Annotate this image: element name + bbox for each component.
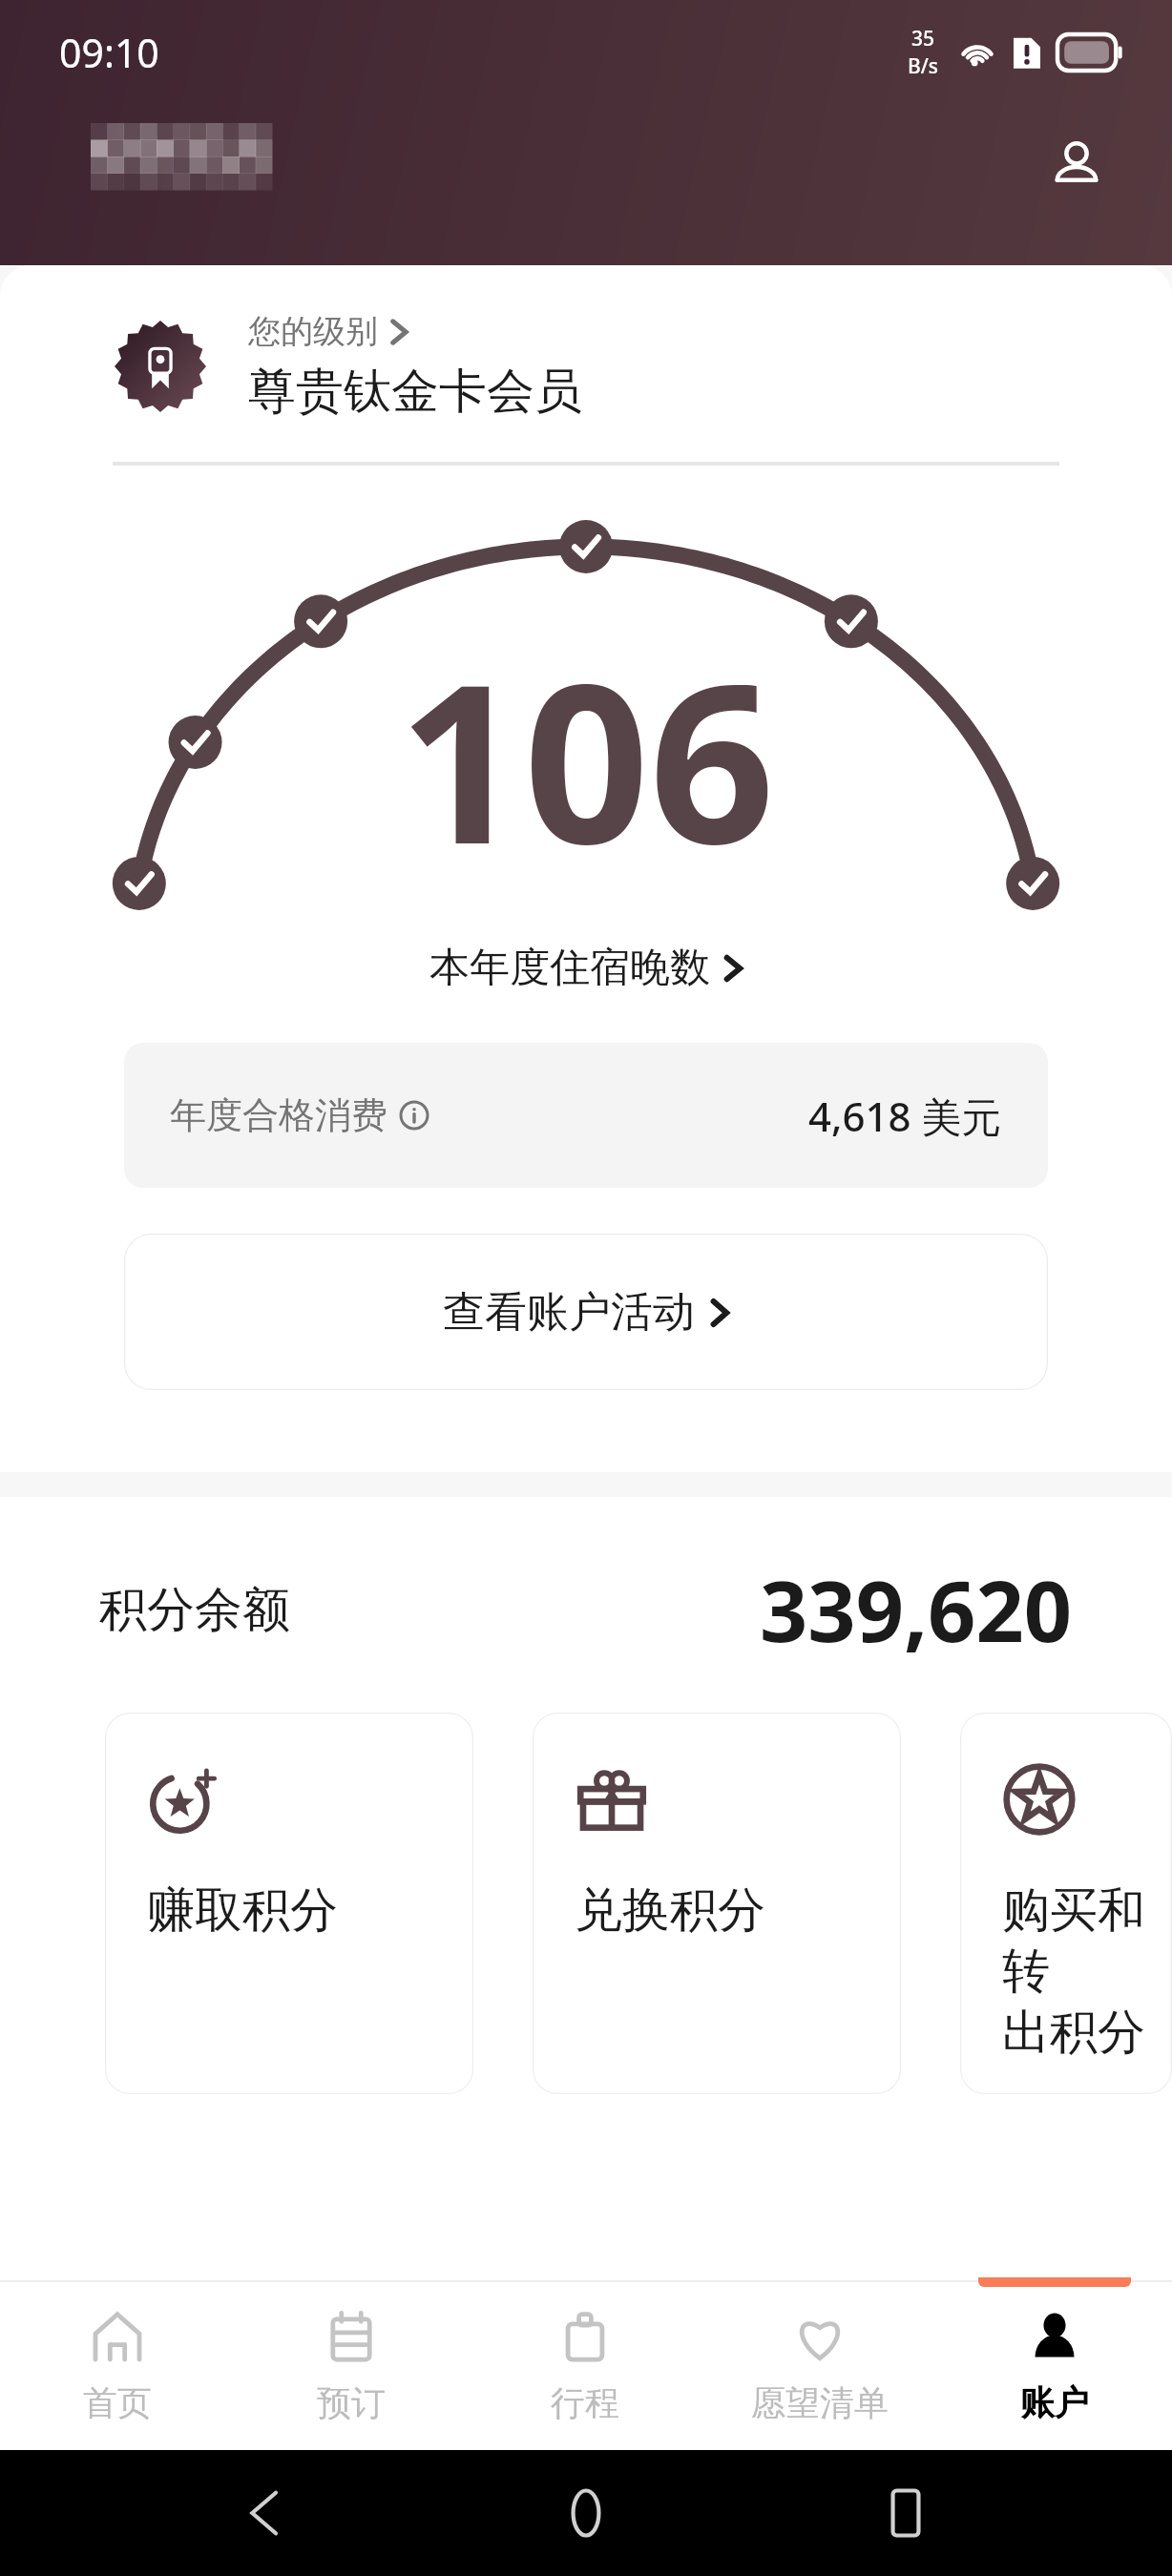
staticText: 35	[911, 25, 935, 52]
button[interactable]: 购买和转 出积分	[960, 1713, 1172, 2094]
staticText: B/s	[908, 52, 939, 80]
staticText: 09:10	[59, 26, 159, 79]
staticText: 积分余额	[99, 1580, 290, 1640]
button[interactable]: Recent apps	[853, 2461, 958, 2566]
staticText: 尊贵钛金卡会员	[248, 362, 582, 422]
staticText: 首页	[83, 2381, 152, 2424]
button[interactable]: 兑换积分	[533, 1713, 901, 2094]
button[interactable]: 愿望清单	[702, 2280, 937, 2450]
button[interactable]: 首页	[0, 2280, 234, 2450]
staticText: 4,618 美元	[808, 1089, 1002, 1143]
button[interactable]: 您的级别	[0, 311, 1172, 422]
button[interactable]: Back	[215, 2461, 320, 2566]
staticText: 339,620	[760, 1552, 1073, 1667]
staticText: 赚取积分	[147, 1880, 338, 1941]
button[interactable]: 账户	[937, 2280, 1172, 2450]
staticText: 账户	[1020, 2381, 1089, 2424]
button[interactable]: 本年度住宿晚数	[0, 943, 1172, 993]
staticText: 106	[398, 609, 775, 907]
button[interactable]: Home	[534, 2461, 638, 2566]
staticText: 行程	[551, 2381, 619, 2424]
staticText: 年度合格消费	[170, 1092, 387, 1138]
button[interactable]: 赚取积分	[105, 1713, 473, 2094]
staticText: 兑换积分	[575, 1880, 765, 1941]
button[interactable]: 年度合格消费	[124, 1043, 1048, 1188]
button[interactable]: 行程	[468, 2280, 702, 2450]
button[interactable]: 查看账户活动	[124, 1234, 1048, 1390]
staticText: 预订	[317, 2381, 386, 2424]
staticText: 本年度住宿晚数	[429, 943, 710, 993]
staticText: 购买和转 出积分	[1002, 1880, 1172, 2063]
staticText: 您的级别	[248, 311, 378, 352]
button[interactable]: Profile	[1031, 118, 1122, 210]
staticText: 查看账户活动	[443, 1286, 695, 1339]
button[interactable]: 预订	[234, 2280, 468, 2450]
staticText: 愿望清单	[751, 2381, 889, 2424]
